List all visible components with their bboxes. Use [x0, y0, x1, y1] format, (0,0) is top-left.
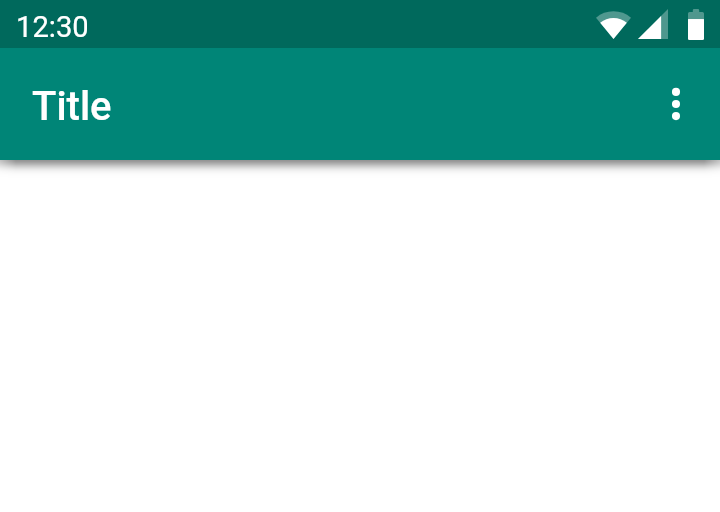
button[interactable]: More options [624, 56, 720, 152]
staticText: Title [32, 83, 112, 130]
staticText: 12:30 [16, 10, 89, 44]
